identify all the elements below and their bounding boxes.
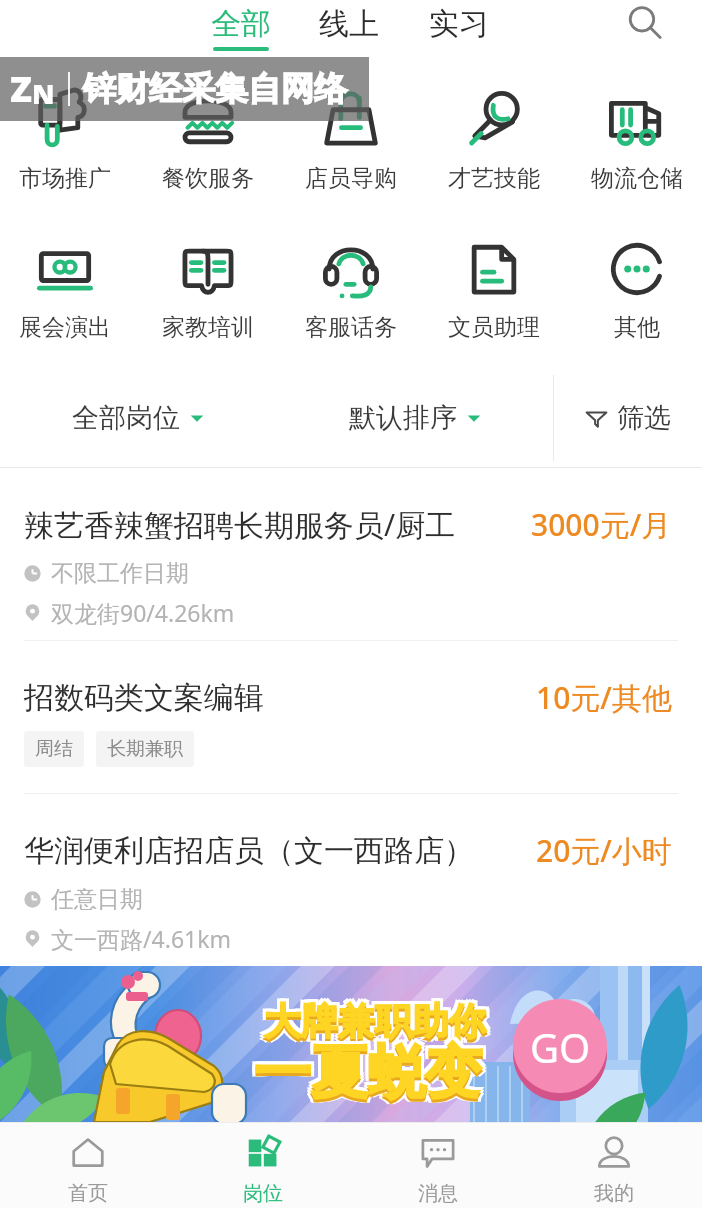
button[interactable]: 岗位 bbox=[175, 1123, 350, 1208]
staticText: 大牌兼职助你 bbox=[264, 1001, 486, 1048]
button[interactable]: 我的 bbox=[526, 1123, 702, 1208]
staticText: 大牌兼职助你 bbox=[264, 1001, 486, 1048]
staticText: 其他 bbox=[614, 313, 660, 342]
staticText: 10元/其他 bbox=[536, 677, 672, 718]
staticText: N bbox=[32, 75, 55, 112]
staticText: 大牌兼职助你 bbox=[261, 998, 483, 1045]
button[interactable]: 市场推广 bbox=[0, 56, 136, 205]
button[interactable]: 全部 bbox=[209, 5, 273, 51]
button[interactable]: 其他 bbox=[565, 205, 702, 354]
staticText: 我的 bbox=[594, 1181, 634, 1206]
staticText: 文一西路/4.61km bbox=[51, 923, 231, 954]
staticText: 大牌兼职助你 bbox=[267, 998, 489, 1045]
button[interactable]: Promotion banner bbox=[0, 966, 702, 1122]
staticText: 家教培训 bbox=[162, 313, 254, 342]
staticText: 周结 bbox=[35, 737, 73, 761]
staticText: 岗位 bbox=[243, 1181, 283, 1206]
staticText: 3000元/月 bbox=[531, 504, 672, 545]
button[interactable]: 展会演出 bbox=[0, 205, 136, 354]
staticText: GO bbox=[530, 1020, 591, 1074]
button[interactable]: 消息 bbox=[350, 1123, 526, 1208]
button[interactable]: 招数码类文案编辑 bbox=[0, 641, 702, 793]
staticText: 大牌兼职助你 bbox=[267, 1001, 489, 1048]
staticText: 不限工作日期 bbox=[51, 559, 189, 588]
staticText: 辣艺香辣蟹招聘长期服务员/厨工 bbox=[24, 504, 523, 545]
button[interactable]: 店员导购 bbox=[279, 56, 422, 205]
staticText: 实习 bbox=[429, 5, 489, 43]
button[interactable]: 才艺技能 bbox=[422, 56, 565, 205]
staticText: 文员助理 bbox=[448, 313, 540, 342]
button[interactable]: 线上 bbox=[317, 5, 381, 51]
staticText: 一夏蜕变 bbox=[257, 1037, 485, 1109]
staticText: 大牌兼职助你 bbox=[264, 998, 486, 1045]
staticText: 双龙街90/4.26km bbox=[51, 597, 235, 628]
button[interactable]: Search bbox=[613, 0, 675, 47]
staticText: 默认排序 bbox=[349, 401, 457, 435]
staticText: 线上 bbox=[319, 5, 379, 43]
staticText: 物流仓储 bbox=[591, 164, 683, 193]
staticText: 才艺技能 bbox=[448, 164, 540, 193]
staticText: 餐饮服务 bbox=[162, 164, 254, 193]
button[interactable]: 首页 bbox=[0, 1123, 175, 1208]
staticText: 大牌兼职助你 bbox=[267, 995, 489, 1042]
staticText: 20元/小时 bbox=[536, 830, 672, 871]
staticText: 一夏蜕变 bbox=[257, 1034, 485, 1106]
staticText: 大牌兼职助你 bbox=[264, 995, 486, 1042]
staticText: 大牌兼职助你 bbox=[261, 1001, 483, 1048]
button[interactable]: 家教培训 bbox=[136, 205, 279, 354]
staticText: 长期兼职 bbox=[107, 737, 183, 761]
staticText: 一夏蜕变 bbox=[254, 1037, 482, 1109]
staticText: 一夏蜕变 bbox=[251, 1040, 479, 1112]
staticText: 任意日期 bbox=[51, 885, 143, 914]
button[interactable]: 默认排序 bbox=[276, 368, 553, 468]
button[interactable]: 实习 bbox=[427, 5, 491, 51]
staticText: 大牌兼职助你 bbox=[261, 995, 483, 1042]
button[interactable]: 辣艺香辣蟹招聘长期服务员/厨工 bbox=[0, 468, 702, 640]
staticText: 展会演出 bbox=[19, 313, 111, 342]
staticText: 消息 bbox=[418, 1181, 458, 1206]
staticText: 一夏蜕变 bbox=[254, 1034, 482, 1106]
button[interactable]: 餐饮服务 bbox=[136, 56, 279, 205]
button[interactable]: 文员助理 bbox=[422, 205, 565, 354]
staticText: 全部 bbox=[211, 5, 271, 43]
button[interactable]: 全部岗位 bbox=[0, 368, 276, 468]
staticText: 华润便利店招店员（文一西路店） bbox=[24, 832, 528, 870]
button[interactable]: 物流仓储 bbox=[565, 56, 702, 205]
button[interactable]: 客服话务 bbox=[279, 205, 422, 354]
button[interactable]: 筛选 bbox=[554, 368, 702, 468]
button[interactable]: 华润便利店招店员（文一西路店） bbox=[0, 794, 702, 966]
staticText: 首页 bbox=[68, 1181, 108, 1206]
staticText: Z bbox=[10, 64, 32, 113]
staticText: 锌财经采集自网络 bbox=[83, 68, 347, 110]
staticText: 市场推广 bbox=[19, 164, 111, 193]
staticText: 筛选 bbox=[617, 401, 671, 435]
staticText: 一夏蜕变 bbox=[254, 1040, 482, 1112]
staticText: 店员导购 bbox=[305, 164, 397, 193]
staticText: 客服话务 bbox=[305, 313, 397, 342]
staticText: 一夏蜕变 bbox=[254, 1040, 482, 1112]
staticText: 一夏蜕变 bbox=[251, 1034, 479, 1106]
staticText: 一夏蜕变 bbox=[257, 1040, 485, 1112]
staticText: 一夏蜕变 bbox=[251, 1037, 479, 1109]
staticText: 招数码类文案编辑 bbox=[24, 679, 528, 717]
staticText: 全部岗位 bbox=[72, 401, 180, 435]
